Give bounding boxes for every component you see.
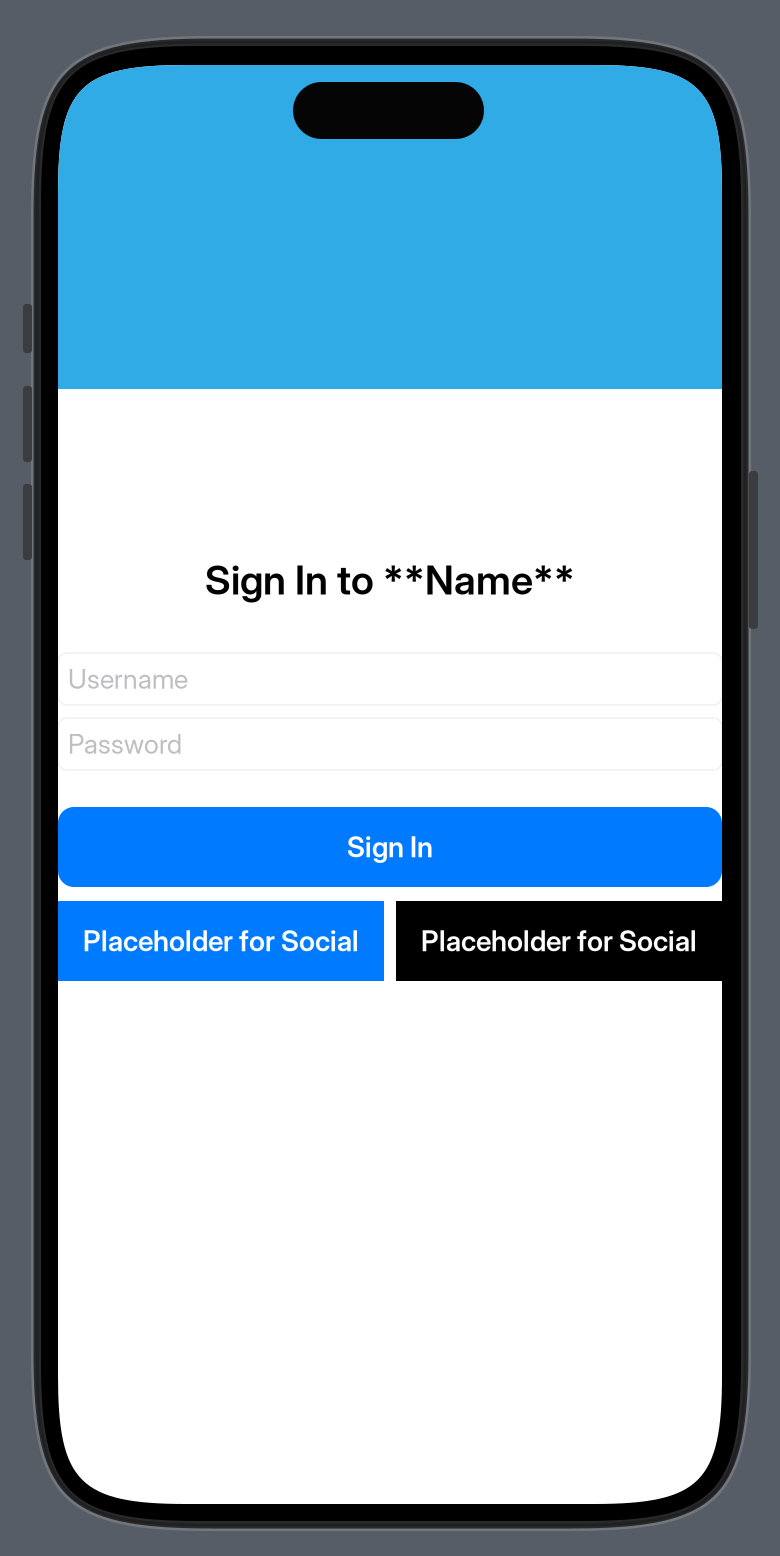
button[interactable]: Placeholder for Social	[396, 901, 722, 981]
button[interactable]: Username	[58, 653, 722, 705]
staticText: Sign In to **Name**	[205, 556, 575, 604]
button[interactable]: Sign In	[58, 807, 722, 887]
staticText: Placeholder for Social	[83, 924, 359, 958]
staticText: Username	[68, 663, 188, 695]
button[interactable]: Password	[58, 718, 722, 770]
staticText: Sign In	[347, 830, 433, 864]
staticText: Password	[68, 728, 182, 760]
button[interactable]: Placeholder for Social	[58, 901, 384, 981]
staticText: Placeholder for Social	[421, 924, 697, 958]
